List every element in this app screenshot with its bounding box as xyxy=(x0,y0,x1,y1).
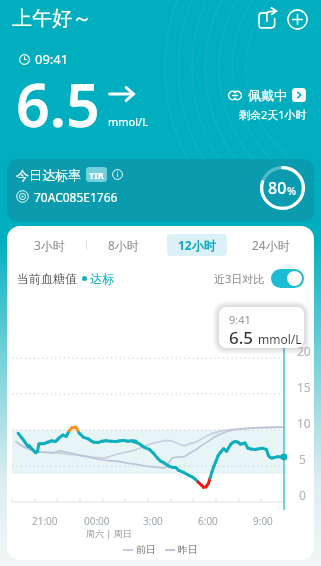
staticText: 10 xyxy=(297,415,311,431)
staticText: 24小时 xyxy=(252,237,290,253)
staticText: 达标 xyxy=(90,271,114,286)
staticText: 周六 | 周日 xyxy=(86,527,132,539)
button[interactable]: Share xyxy=(252,3,282,35)
staticText: 8小时 xyxy=(108,237,139,253)
button[interactable]: 12小时 xyxy=(167,234,227,256)
staticText: TIR xyxy=(89,169,104,180)
staticText: 近3日对比 xyxy=(214,271,265,286)
staticText: 9:41 xyxy=(229,312,251,327)
other: Info xyxy=(112,169,123,180)
button[interactable]: Add xyxy=(282,3,312,35)
staticText: mmol/L xyxy=(108,114,148,129)
staticText: 15 xyxy=(297,379,311,395)
staticText: 3小时 xyxy=(34,237,65,253)
staticText: 3:00 xyxy=(143,514,163,528)
button[interactable]: 3小时 xyxy=(20,234,79,256)
staticText: 70AC085E1766 xyxy=(34,189,118,203)
staticText: 21:00 xyxy=(32,514,58,528)
staticText: 佩戴中 xyxy=(248,87,287,103)
staticText: 00:00 xyxy=(84,514,110,528)
staticText: 当前血糖值 xyxy=(17,271,77,286)
staticText: 80 xyxy=(268,177,287,199)
staticText: 前日 xyxy=(136,543,156,556)
staticText: 0 xyxy=(299,487,306,503)
staticText: 6.5 xyxy=(16,64,100,144)
staticText: 6.5 xyxy=(229,326,254,348)
button[interactable]: Compare last 3 days xyxy=(271,269,304,288)
staticText: 昨日 xyxy=(178,543,198,556)
staticText: 今日达标率 xyxy=(16,167,81,182)
staticText: 09:41 xyxy=(35,50,69,68)
button[interactable]: Sensor wearing status xyxy=(228,87,306,103)
staticText: 6:00 xyxy=(198,514,218,528)
staticText: 上午好～ xyxy=(12,6,92,31)
staticText: % xyxy=(287,183,297,198)
staticText: 20 xyxy=(297,343,311,359)
staticText: 剩余2天1小时 xyxy=(239,107,307,122)
staticText: 5 xyxy=(299,451,306,467)
staticText: 9:00 xyxy=(253,514,273,528)
button[interactable]: 24小时 xyxy=(241,234,301,256)
staticText: 12小时 xyxy=(178,237,216,253)
button[interactable]: 8小时 xyxy=(94,234,153,256)
staticText: mmol/L xyxy=(258,331,302,347)
button[interactable]: 今日达标率 xyxy=(7,159,314,222)
